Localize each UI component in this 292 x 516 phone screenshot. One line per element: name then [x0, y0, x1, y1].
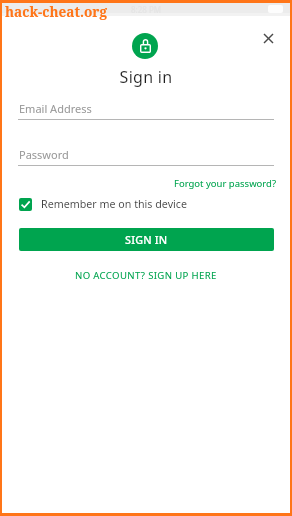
- staticText: Remember me on this device: [41, 197, 187, 212]
- staticText: SIGN IN: [125, 232, 168, 247]
- button[interactable]: SIGN IN: [19, 228, 274, 251]
- button[interactable]: Remember me on this device: [19, 197, 187, 212]
- staticText: Password: [19, 147, 69, 162]
- button[interactable]: Password: [18, 144, 274, 166]
- staticText: Forgot your password?: [174, 177, 277, 190]
- staticText: NO ACCOUNT? SIGN UP HERE: [75, 269, 217, 282]
- button[interactable]: Forgot your password?: [172, 175, 279, 192]
- staticText: hack-cheat.org: [5, 2, 107, 21]
- button[interactable]: Email Address: [18, 98, 274, 120]
- staticText: Sign in: [0, 66, 292, 88]
- staticText: Email Address: [19, 101, 92, 116]
- staticText: 8:28 PM: [0, 4, 292, 15]
- button[interactable]: NO ACCOUNT? SIGN UP HERE: [71, 266, 221, 285]
- button[interactable]: Close: [259, 29, 277, 47]
